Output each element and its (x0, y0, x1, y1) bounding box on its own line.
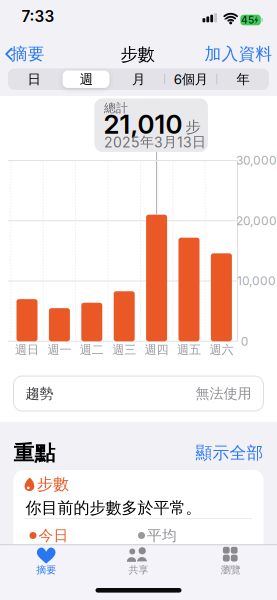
staticText: 總計 (104, 101, 128, 115)
staticText: 2025年3月13日 (104, 134, 206, 151)
staticText: 摘要 (11, 44, 45, 64)
staticText: 步數 (37, 474, 69, 494)
staticText: 重點 (13, 440, 55, 466)
staticText: 週 (80, 71, 93, 87)
staticText: 0 (241, 334, 249, 348)
staticText: 共享 (128, 564, 148, 576)
staticText: 週六 (209, 342, 233, 357)
staticText: 6個月 (174, 71, 208, 87)
staticText: 步數 (120, 44, 154, 65)
staticText: 10,000 (237, 274, 276, 288)
staticText: 週四 (145, 342, 169, 357)
staticText: 月 (132, 71, 145, 87)
staticText: 平均 (147, 526, 177, 544)
staticText: 加入資料 (204, 44, 272, 64)
staticText: 年 (236, 71, 249, 87)
staticText: 45 (241, 14, 254, 26)
staticText: 今日 (38, 526, 68, 544)
staticText: 你目前的步數多於平常。 (25, 498, 201, 518)
staticText: 30,000 (236, 153, 277, 168)
staticText: 週五 (177, 342, 201, 357)
staticText: 步 (185, 118, 200, 136)
staticText: 週一 (47, 342, 71, 357)
staticText: 趨勢 (25, 385, 53, 402)
staticText: 摘要 (36, 564, 56, 576)
staticText: 20,000 (236, 214, 277, 228)
staticText: 週三 (112, 342, 136, 357)
staticText: 日 (28, 71, 41, 87)
staticText: 21,010 (103, 109, 182, 140)
staticText: 顯示全部 (195, 443, 263, 463)
staticText: 週日 (15, 342, 39, 357)
staticText: 週二 (80, 342, 104, 357)
staticText: 7:33 (21, 7, 54, 26)
staticText: 瀏覽 (221, 564, 241, 576)
staticText: 無法使用 (195, 385, 251, 402)
